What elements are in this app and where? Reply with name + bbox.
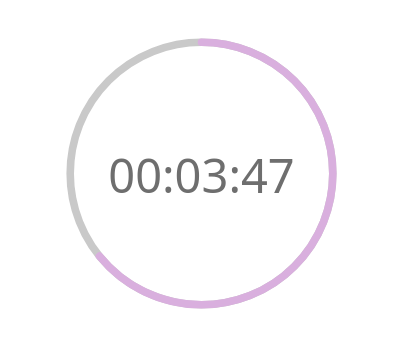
- button[interactable]: Timer progress 00:03:47: [0, 0, 403, 350]
- staticText: 00:03:47: [108, 143, 295, 207]
